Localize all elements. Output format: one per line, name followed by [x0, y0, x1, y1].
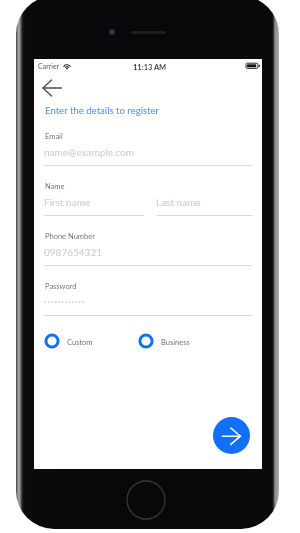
- staticText: Enter the details to register: [45, 105, 160, 117]
- staticText: Name: [45, 182, 65, 191]
- staticText: First name: [44, 196, 91, 208]
- staticText: Phone Number: [45, 232, 95, 241]
- staticText: 0987654321: [44, 246, 103, 258]
- button[interactable]: Back: [36, 73, 68, 103]
- button[interactable]: Next: [213, 417, 250, 454]
- staticText: Custom: [67, 338, 93, 347]
- button[interactable]: Business: [138, 331, 190, 351]
- staticText: 11:13 AM: [133, 63, 167, 72]
- staticText: Business: [161, 338, 190, 347]
- staticText: Email: [45, 132, 63, 141]
- staticText: Last name: [156, 196, 201, 208]
- staticText: Password: [45, 282, 77, 291]
- staticText: Carrier: [38, 62, 60, 70]
- button[interactable]: Custom: [44, 331, 93, 351]
- staticText: name@example.com: [44, 146, 134, 158]
